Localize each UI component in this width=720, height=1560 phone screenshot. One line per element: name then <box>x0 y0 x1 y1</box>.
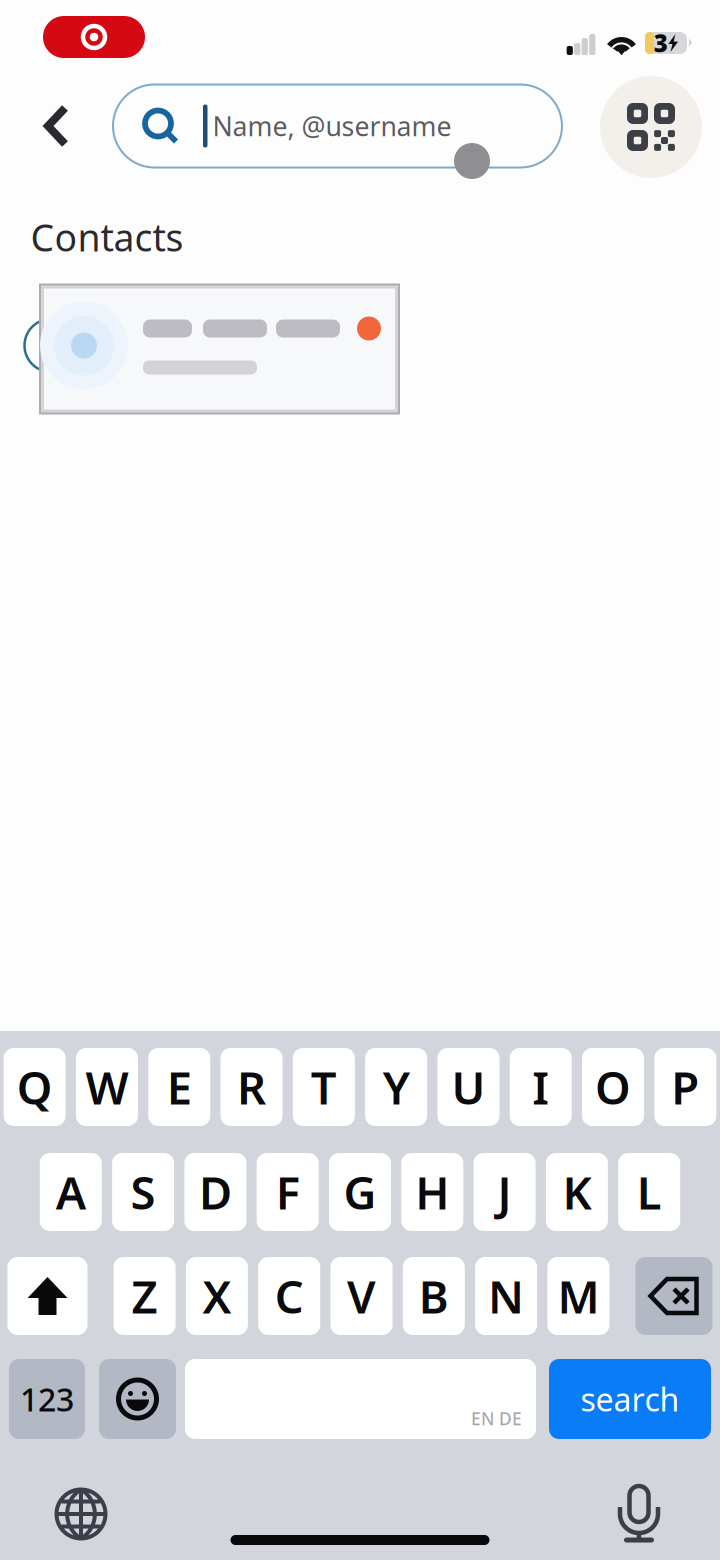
button[interactable]: J <box>474 1153 536 1231</box>
button[interactable]: Emoji <box>99 1359 176 1439</box>
button[interactable]: Switch keyboard <box>43 1476 119 1552</box>
button[interactable]: M <box>547 1257 609 1335</box>
staticText: search <box>580 1378 679 1420</box>
button[interactable]: Name, @username <box>113 84 562 167</box>
staticText: R <box>237 1057 266 1117</box>
button[interactable]: X <box>186 1257 248 1335</box>
button[interactable]: S <box>112 1153 174 1231</box>
staticText: J <box>498 1162 512 1222</box>
button[interactable]: K <box>546 1153 608 1231</box>
button[interactable]: Dictate <box>601 1476 677 1552</box>
staticText: E <box>167 1057 192 1117</box>
button[interactable]: Space <box>185 1359 536 1439</box>
staticText: Y <box>383 1057 410 1117</box>
staticText: L <box>637 1162 662 1222</box>
staticText: Name, @username <box>212 108 451 144</box>
staticText: F <box>276 1162 300 1222</box>
staticText: X <box>202 1266 231 1326</box>
button[interactable]: W <box>76 1048 138 1126</box>
button[interactable]: F <box>257 1153 319 1231</box>
staticText: Contacts <box>30 212 183 262</box>
staticText: B <box>419 1266 449 1326</box>
button[interactable]: H <box>401 1153 463 1231</box>
staticText: A <box>56 1162 86 1222</box>
button[interactable]: T <box>293 1048 355 1126</box>
button[interactable]: C <box>258 1257 320 1335</box>
staticText: G <box>343 1162 376 1222</box>
staticText: Z <box>132 1266 158 1326</box>
button[interactable]: N <box>475 1257 537 1335</box>
button[interactable]: E <box>148 1048 210 1126</box>
button[interactable]: Z <box>114 1257 176 1335</box>
button[interactable]: L <box>618 1153 680 1231</box>
button[interactable]: U <box>437 1048 499 1126</box>
button[interactable]: search <box>549 1359 711 1439</box>
staticText: K <box>562 1162 591 1222</box>
button[interactable]: B <box>403 1257 465 1335</box>
button[interactable]: P <box>654 1048 716 1126</box>
button[interactable]: R <box>220 1048 282 1126</box>
staticText: N <box>488 1266 524 1326</box>
staticText: D <box>199 1162 232 1222</box>
button[interactable]: V <box>330 1257 392 1335</box>
staticText: P <box>671 1057 699 1117</box>
button[interactable]: Y <box>365 1048 427 1126</box>
staticText: I <box>532 1057 549 1117</box>
staticText: 3 <box>654 27 668 59</box>
button[interactable]: Shift <box>7 1257 87 1335</box>
staticText: O <box>595 1057 631 1117</box>
button[interactable]: 123 <box>9 1359 85 1439</box>
staticText: V <box>347 1266 376 1326</box>
button[interactable]: Contact <box>39 283 400 414</box>
button[interactable]: Q <box>4 1048 66 1126</box>
staticText: W <box>85 1057 128 1117</box>
button[interactable]: O <box>582 1048 644 1126</box>
staticText: EN DE <box>471 1407 522 1430</box>
staticText: H <box>415 1162 449 1222</box>
staticText: U <box>451 1057 485 1117</box>
button[interactable]: I <box>510 1048 572 1126</box>
button[interactable]: G <box>329 1153 391 1231</box>
button[interactable]: Back <box>22 89 92 163</box>
staticText: S <box>131 1162 156 1222</box>
button[interactable]: Delete <box>635 1257 712 1335</box>
staticText: 123 <box>20 1378 74 1420</box>
staticText: T <box>311 1057 337 1117</box>
staticText: M <box>557 1266 599 1326</box>
button[interactable]: Scan QR code <box>600 76 702 178</box>
button[interactable]: A <box>40 1153 102 1231</box>
button[interactable]: D <box>184 1153 246 1231</box>
staticText: C <box>275 1266 304 1326</box>
staticText: Q <box>17 1057 53 1117</box>
